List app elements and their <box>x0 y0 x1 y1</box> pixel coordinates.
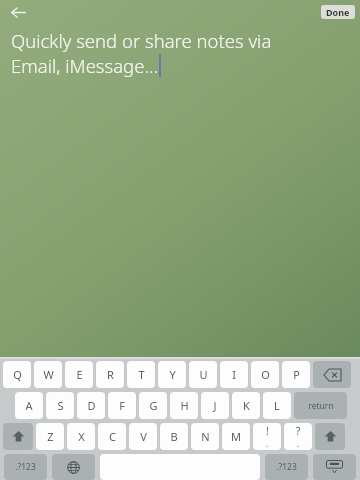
staticText: N <box>201 429 210 444</box>
staticText: B <box>170 429 178 444</box>
staticText: M <box>231 429 241 444</box>
staticText: R <box>107 367 114 382</box>
button[interactable]: J <box>201 392 229 419</box>
staticText: Done <box>326 6 350 18</box>
button[interactable]: O <box>251 361 279 388</box>
staticText: return <box>308 400 334 412</box>
button[interactable]: E <box>65 361 93 388</box>
staticText: X <box>78 429 85 444</box>
staticText: . <box>266 438 269 449</box>
staticText: O <box>261 367 270 382</box>
staticText: A <box>25 398 33 413</box>
button[interactable]: Change keyboard <box>52 454 95 480</box>
button[interactable]: L <box>263 392 291 419</box>
button[interactable]: I <box>220 361 248 388</box>
staticText: I <box>232 367 236 382</box>
staticText: ! <box>266 424 269 438</box>
staticText: ? <box>296 424 301 438</box>
staticText: C <box>109 429 116 444</box>
button[interactable]: A <box>15 392 43 419</box>
staticText: .?123 <box>15 461 36 473</box>
button[interactable]: Z <box>36 423 64 450</box>
button[interactable]: Shift <box>315 423 345 450</box>
staticText: T <box>138 367 145 382</box>
staticText: Y <box>169 367 176 382</box>
button[interactable]: .?123 <box>265 454 308 480</box>
button[interactable]: Done <box>321 5 355 19</box>
staticText: . <box>297 438 300 449</box>
staticText: Z <box>47 429 54 444</box>
button[interactable]: K <box>232 392 260 419</box>
staticText: U <box>199 367 208 382</box>
staticText: H <box>180 398 189 413</box>
staticText: G <box>149 398 158 413</box>
button[interactable]: C <box>98 423 126 450</box>
button[interactable]: R <box>96 361 124 388</box>
button[interactable]: H <box>170 392 198 419</box>
button[interactable]: Q <box>3 361 31 388</box>
button[interactable]: Shift <box>3 423 33 450</box>
staticText: D <box>87 398 96 413</box>
button[interactable]: F <box>108 392 136 419</box>
staticText: J <box>213 398 217 413</box>
staticText: Quickly send or share notes via <box>11 28 272 53</box>
staticText: F <box>119 398 125 413</box>
button[interactable]: Hide keyboard <box>313 454 356 480</box>
staticText: E <box>76 367 83 382</box>
button[interactable]: U <box>189 361 217 388</box>
staticText: P <box>293 367 300 382</box>
staticText: K <box>243 398 250 413</box>
staticText: W <box>43 367 54 382</box>
staticText: Email, iMessage... <box>11 53 158 78</box>
button[interactable]: N <box>191 423 219 450</box>
button[interactable]: return <box>294 392 347 419</box>
button[interactable]: Backspace <box>313 361 351 388</box>
button[interactable]: G <box>139 392 167 419</box>
button[interactable]: P <box>282 361 310 388</box>
staticText: Q <box>13 367 22 382</box>
staticText: L <box>274 398 280 413</box>
button[interactable]: T <box>127 361 155 388</box>
button[interactable]: S <box>46 392 74 419</box>
button[interactable]: .?123 <box>4 454 47 480</box>
button[interactable]: Y <box>158 361 186 388</box>
button[interactable]: Back <box>4 0 32 24</box>
button[interactable]: W <box>34 361 62 388</box>
staticText: .?123 <box>276 461 297 473</box>
button[interactable]: B <box>160 423 188 450</box>
staticText: V <box>140 429 147 444</box>
button[interactable]: D <box>77 392 105 419</box>
button[interactable]: ! <box>253 423 281 450</box>
button[interactable]: X <box>67 423 95 450</box>
staticText: S <box>57 398 64 413</box>
button[interactable]: V <box>129 423 157 450</box>
button[interactable]: M <box>222 423 250 450</box>
button[interactable]: ? <box>284 423 312 450</box>
